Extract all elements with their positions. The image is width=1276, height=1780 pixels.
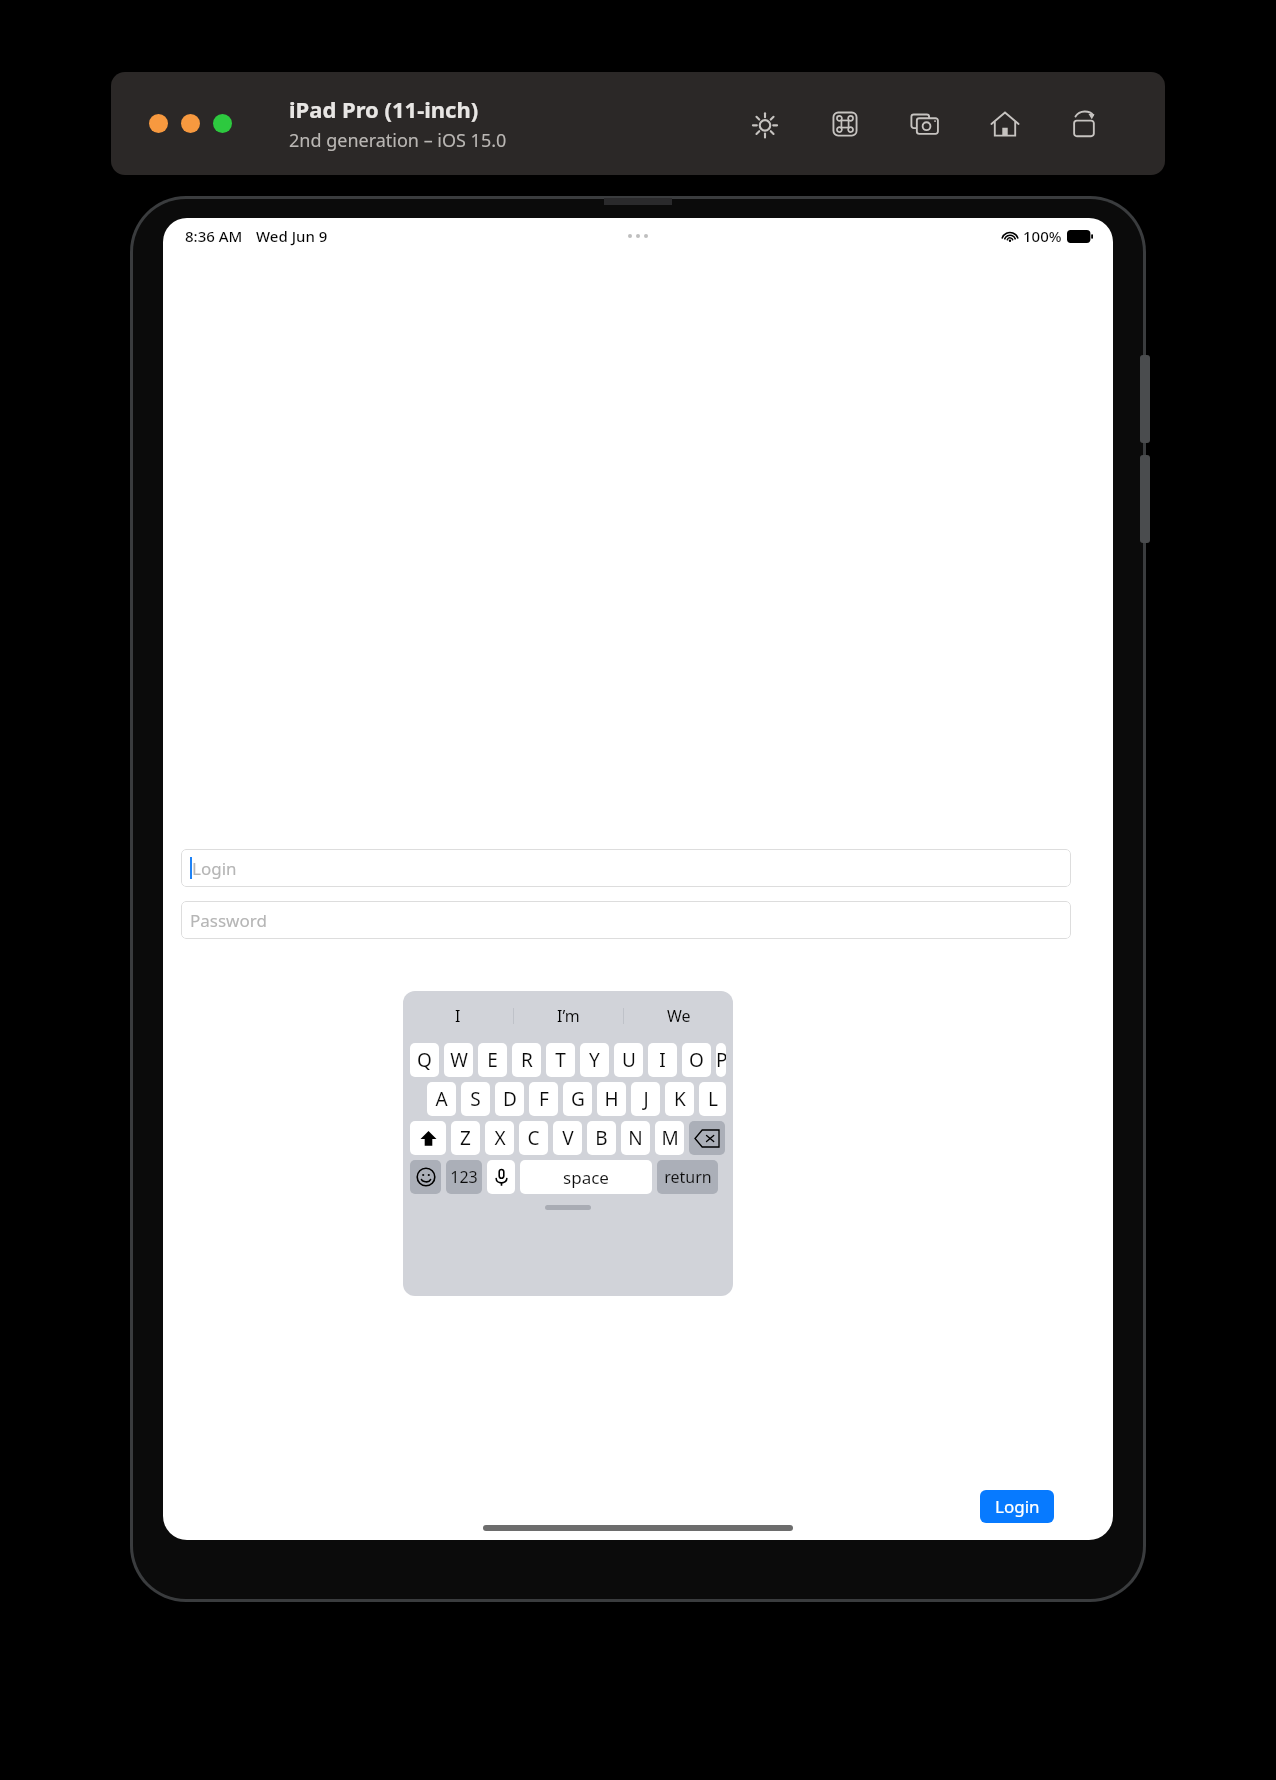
- staticText: P: [716, 1047, 726, 1073]
- staticText: We: [667, 1005, 691, 1027]
- button[interactable]: Home: [985, 104, 1025, 144]
- button[interactable]: J: [631, 1082, 660, 1116]
- button[interactable]: X: [485, 1121, 514, 1155]
- staticText: I: [455, 1005, 461, 1027]
- button[interactable]: Y: [580, 1043, 609, 1077]
- staticText: Login: [192, 857, 237, 880]
- staticText: B: [595, 1125, 608, 1151]
- staticText: 2nd generation – iOS 15.0: [289, 128, 507, 153]
- staticText: C: [527, 1125, 540, 1151]
- button[interactable]: L: [699, 1082, 726, 1116]
- button[interactable]: I: [648, 1043, 677, 1077]
- staticText: M: [661, 1125, 679, 1151]
- button[interactable]: R: [512, 1043, 541, 1077]
- button[interactable]: B: [587, 1121, 616, 1155]
- button[interactable]: T: [546, 1043, 575, 1077]
- button[interactable]: A: [427, 1082, 456, 1116]
- button[interactable]: W: [444, 1043, 473, 1077]
- staticText: 123: [450, 1166, 478, 1188]
- button[interactable]: [689, 1121, 725, 1155]
- button[interactable]: 123: [446, 1160, 482, 1194]
- button[interactable]: [213, 114, 232, 133]
- staticText: V: [562, 1125, 574, 1151]
- staticText: Password: [190, 909, 267, 932]
- staticText: H: [604, 1086, 619, 1112]
- button[interactable]: return: [657, 1160, 718, 1194]
- staticText: iPad Pro (11-inch): [289, 94, 479, 124]
- button[interactable]: Password: [181, 901, 1071, 939]
- button[interactable]: C: [519, 1121, 548, 1155]
- button[interactable]: Z: [451, 1121, 480, 1155]
- staticText: D: [503, 1086, 517, 1112]
- button[interactable]: Rotate: [1065, 104, 1105, 144]
- button[interactable]: Keyboard shortcuts: [825, 104, 865, 144]
- button[interactable]: P: [716, 1043, 726, 1077]
- staticText: K: [674, 1086, 686, 1112]
- staticText: 8:36 AM: [185, 226, 243, 246]
- staticText: Y: [589, 1047, 600, 1073]
- button[interactable]: I: [403, 999, 513, 1033]
- staticText: return: [664, 1166, 712, 1188]
- button[interactable]: K: [665, 1082, 694, 1116]
- button[interactable]: We: [624, 999, 733, 1033]
- staticText: A: [435, 1086, 448, 1112]
- staticText: E: [487, 1047, 498, 1073]
- staticText: X: [494, 1125, 506, 1151]
- button[interactable]: H: [597, 1082, 626, 1116]
- staticText: S: [470, 1086, 481, 1112]
- button[interactable]: D: [495, 1082, 524, 1116]
- button[interactable]: Login: [181, 849, 1071, 887]
- button[interactable]: [487, 1160, 515, 1194]
- button[interactable]: Dismiss keyboard: [545, 1205, 591, 1210]
- staticText: O: [689, 1047, 704, 1073]
- button[interactable]: G: [563, 1082, 592, 1116]
- staticText: 100%: [1023, 226, 1062, 246]
- staticText: Z: [460, 1125, 471, 1151]
- button[interactable]: Screenshot: [905, 104, 945, 144]
- staticText: F: [539, 1086, 549, 1112]
- button[interactable]: O: [682, 1043, 711, 1077]
- staticText: G: [571, 1086, 585, 1112]
- button[interactable]: U: [614, 1043, 643, 1077]
- staticText: Wed Jun 9: [256, 226, 328, 246]
- button[interactable]: E: [478, 1043, 507, 1077]
- staticText: I: [659, 1047, 666, 1073]
- staticText: Login: [995, 1495, 1040, 1518]
- staticText: space: [563, 1166, 609, 1189]
- button[interactable]: Q: [410, 1043, 439, 1077]
- staticText: L: [708, 1086, 718, 1112]
- button[interactable]: Brightness: [745, 104, 785, 144]
- button[interactable]: [410, 1160, 441, 1194]
- button[interactable]: M: [655, 1121, 684, 1155]
- button[interactable]: space: [520, 1160, 652, 1194]
- button[interactable]: V: [553, 1121, 582, 1155]
- staticText: U: [622, 1047, 636, 1073]
- button[interactable]: F: [529, 1082, 558, 1116]
- button[interactable]: N: [621, 1121, 650, 1155]
- button[interactable]: [410, 1121, 446, 1155]
- staticText: N: [628, 1125, 643, 1151]
- staticText: J: [643, 1086, 649, 1112]
- staticText: Q: [417, 1047, 432, 1073]
- staticText: W: [450, 1047, 468, 1073]
- button[interactable]: [181, 114, 200, 133]
- staticText: I’m: [557, 1005, 580, 1027]
- staticText: R: [521, 1047, 533, 1073]
- button[interactable]: S: [461, 1082, 490, 1116]
- button[interactable]: [149, 114, 168, 133]
- button[interactable]: I’m: [514, 999, 623, 1033]
- button[interactable]: Login: [980, 1490, 1054, 1523]
- staticText: T: [555, 1047, 566, 1073]
